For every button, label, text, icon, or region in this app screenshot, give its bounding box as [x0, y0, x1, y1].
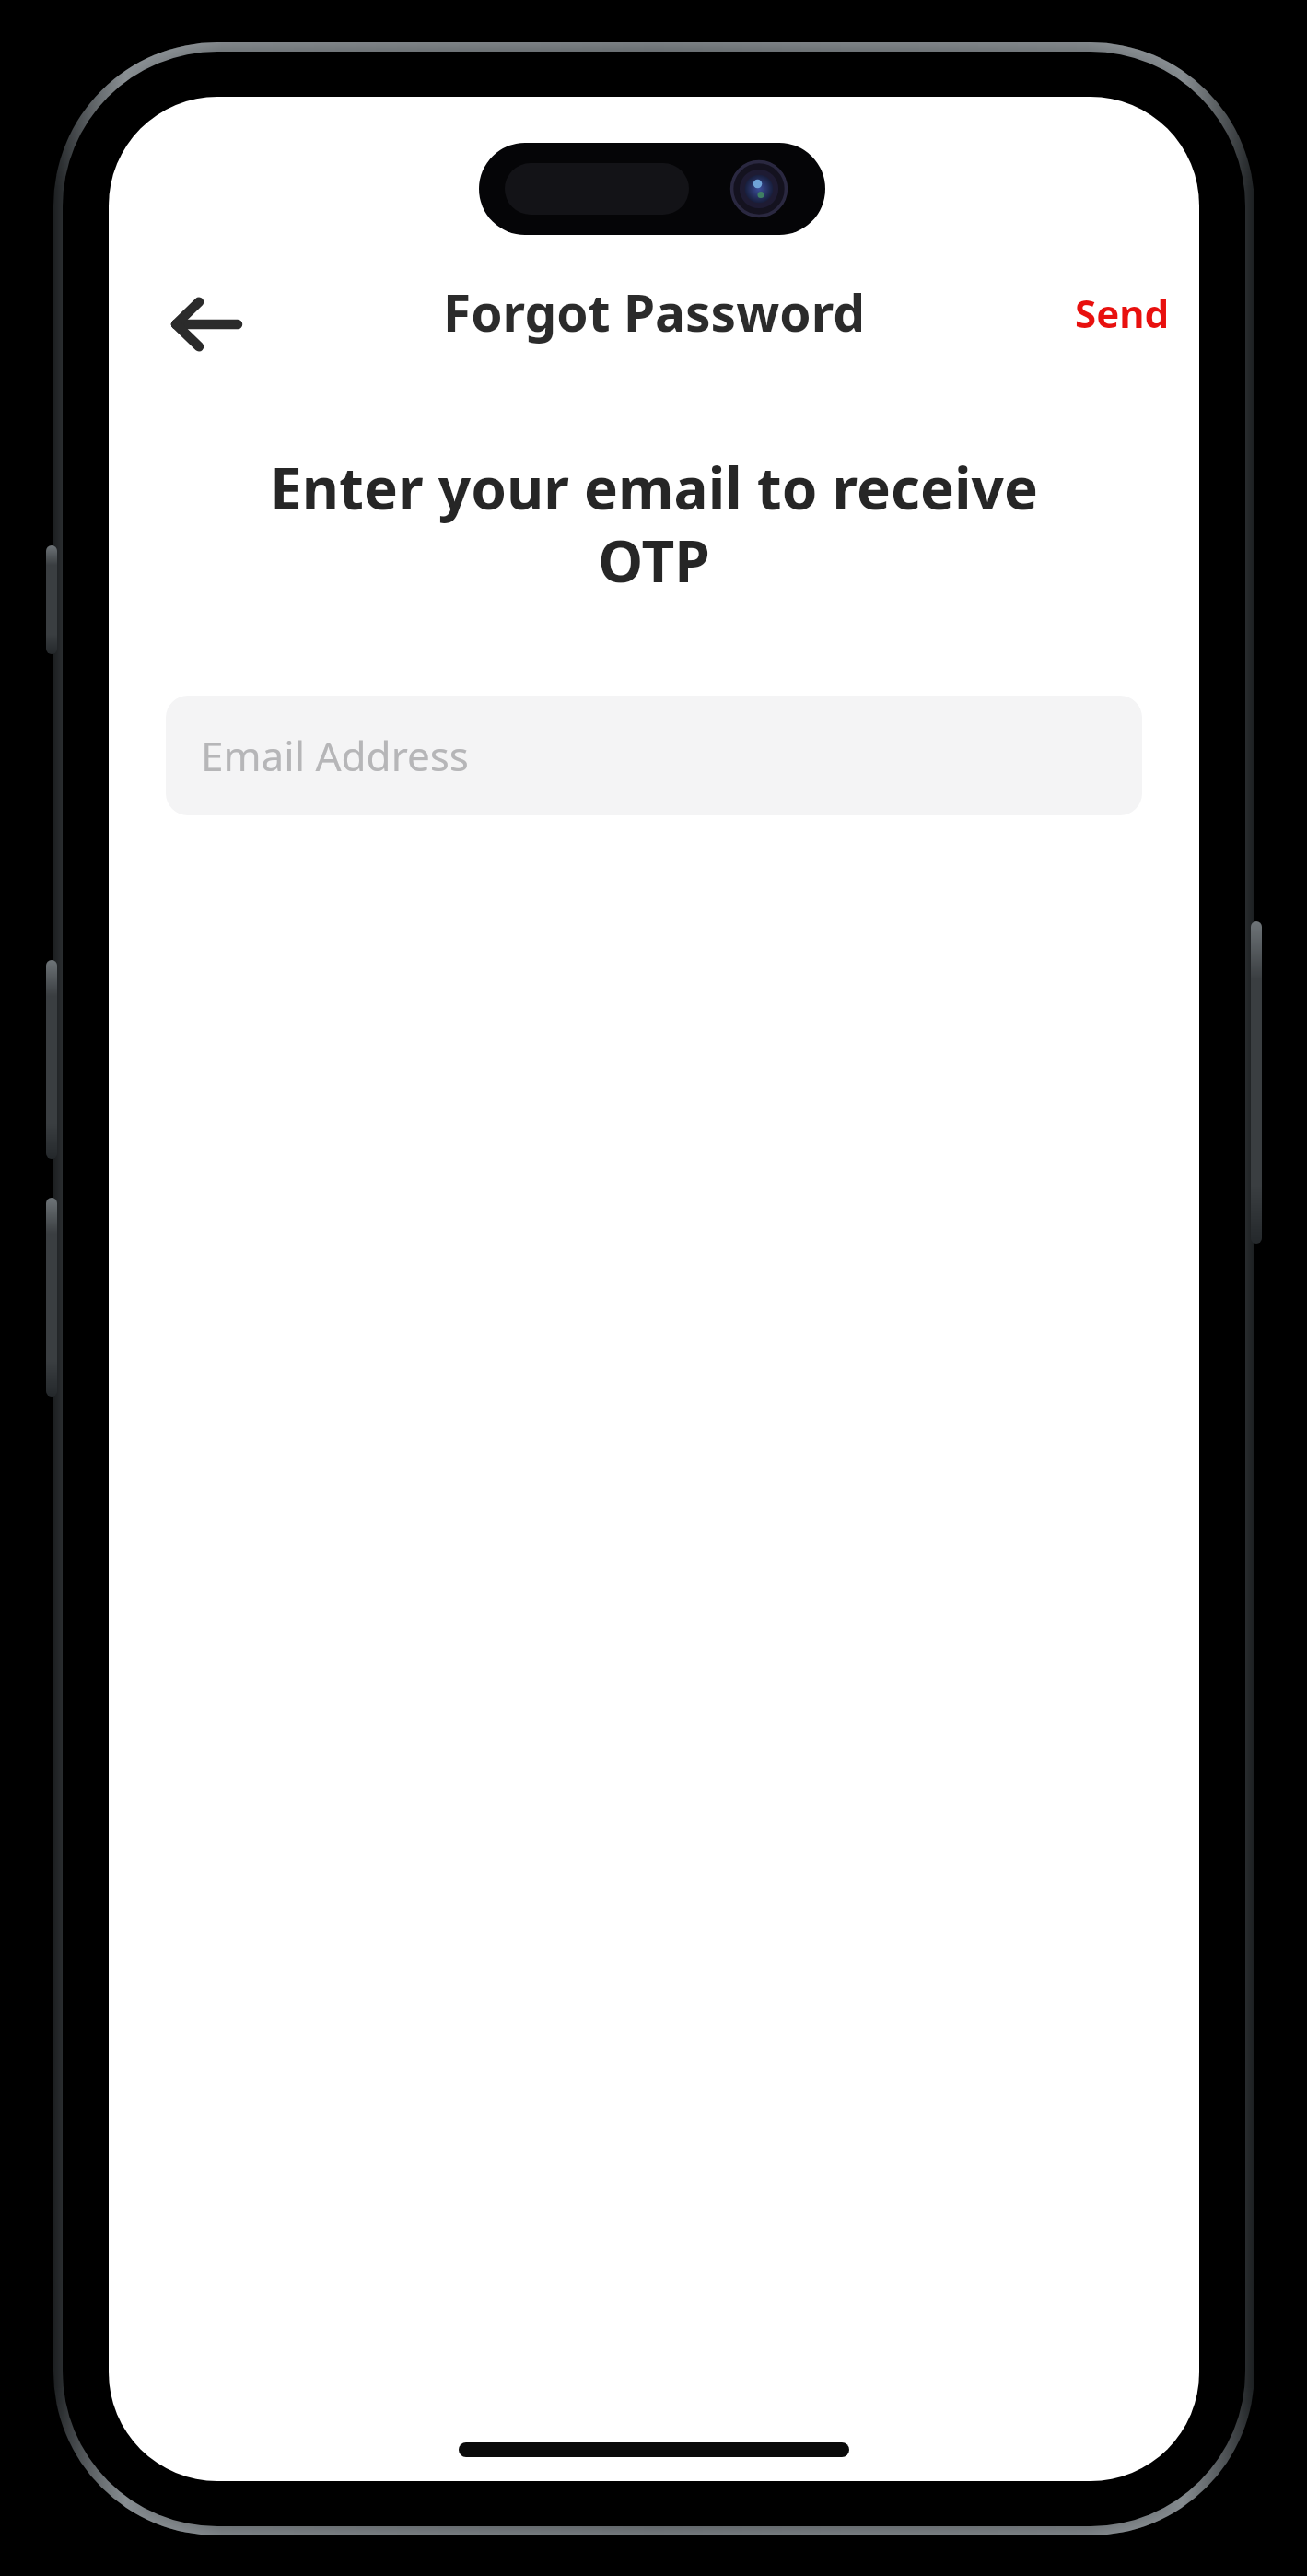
button[interactable]: Send	[1057, 268, 1186, 357]
staticText: Email Address	[201, 728, 469, 783]
staticText: Send	[1075, 287, 1170, 339]
staticText: Enter your email to receive OTP	[217, 449, 1091, 599]
button[interactable]: Email Address	[166, 696, 1142, 815]
button[interactable]: Back	[146, 264, 265, 384]
staticText: Forgot Password	[443, 277, 865, 346]
